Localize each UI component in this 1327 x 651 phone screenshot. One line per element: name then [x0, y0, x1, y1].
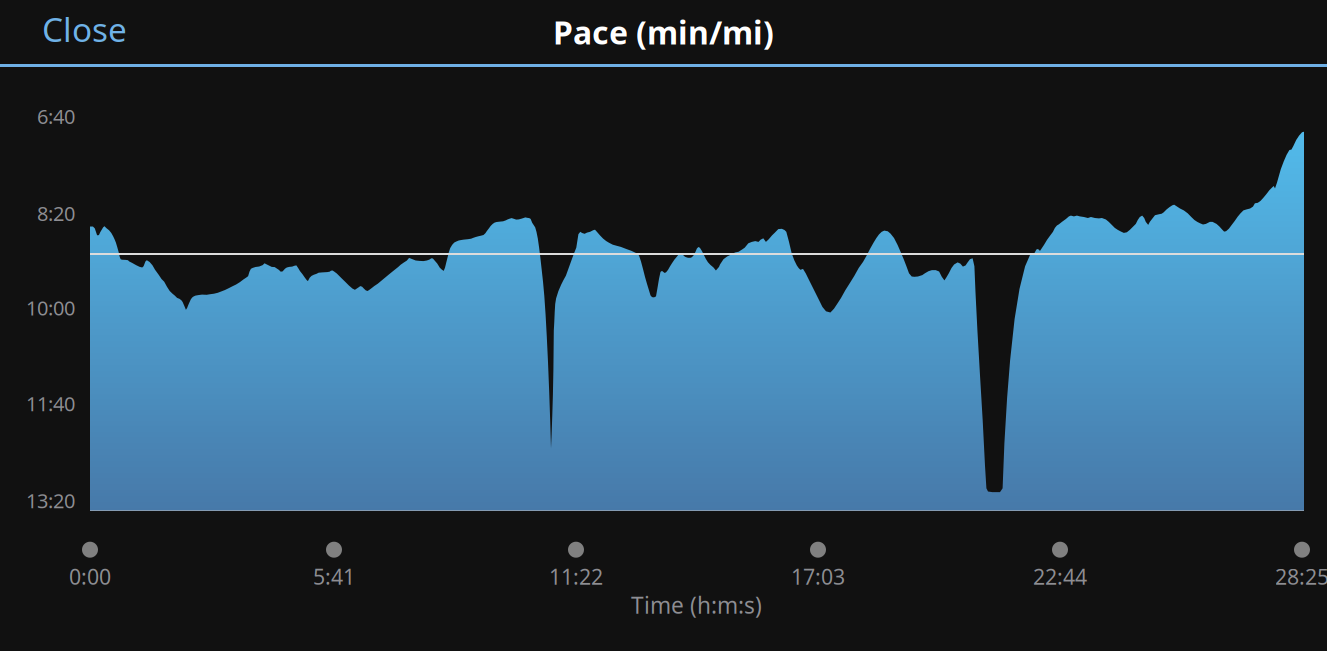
staticText: 5:41 — [313, 562, 355, 591]
staticText: 11:22 — [549, 562, 603, 591]
staticText: 22:44 — [1033, 562, 1087, 591]
staticText: 0:00 — [69, 562, 111, 591]
staticText: Close — [42, 7, 127, 51]
staticText: 13:20 — [26, 487, 75, 514]
staticText: 17:03 — [791, 562, 845, 591]
staticText: Time (h:m:s) — [631, 590, 762, 620]
staticText: 8:20 — [37, 200, 75, 227]
staticText: 28:25 — [1275, 562, 1327, 591]
button[interactable]: Close — [0, 1, 145, 63]
staticText: 11:40 — [26, 390, 75, 417]
staticText: 10:00 — [26, 294, 75, 321]
staticText: Pace (min/mi) — [553, 11, 774, 53]
staticText: 6:40 — [37, 103, 75, 130]
